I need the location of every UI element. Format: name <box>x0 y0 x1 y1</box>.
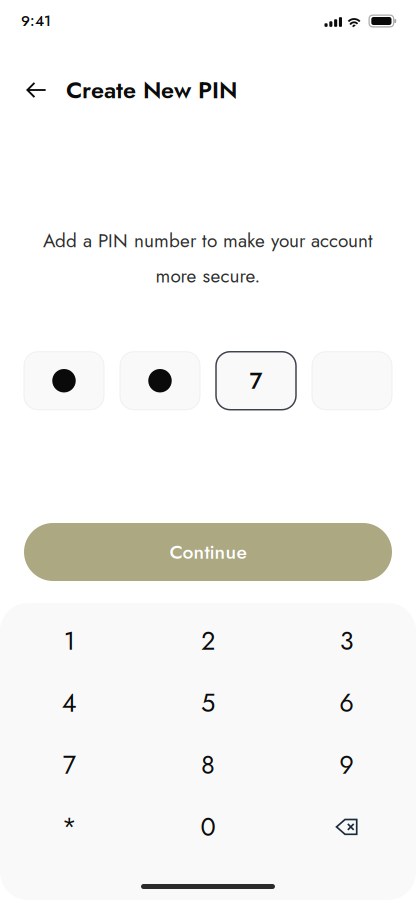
button[interactable]: Back <box>20 72 53 108</box>
staticText: 1 <box>64 623 75 659</box>
staticText: * <box>62 809 77 845</box>
staticText: Add a PIN number to make your account <box>43 227 373 254</box>
button[interactable]: 6 <box>277 672 416 734</box>
staticText: 8 <box>201 747 215 783</box>
button[interactable]: * <box>0 796 139 858</box>
staticText: Continue <box>169 538 246 566</box>
button[interactable]: 1 <box>0 610 139 672</box>
staticText: 9 <box>339 747 354 783</box>
staticText: more secure. <box>155 262 260 290</box>
staticText: 5 <box>201 685 215 721</box>
staticText: 6 <box>339 685 354 721</box>
button[interactable]: 3 <box>277 610 416 672</box>
staticText: 9:41 <box>21 10 51 32</box>
button[interactable]: 9 <box>277 734 416 796</box>
staticText: 4 <box>62 685 77 721</box>
button[interactable]: Delete <box>277 796 416 858</box>
staticText: 2 <box>201 623 215 659</box>
staticText: 3 <box>340 623 354 659</box>
staticText: 7 <box>63 747 76 783</box>
staticText: 0 <box>200 809 215 845</box>
button[interactable]: 4 <box>0 672 139 734</box>
staticText: 7 <box>249 364 262 398</box>
button[interactable]: 7 <box>0 734 139 796</box>
button[interactable]: 2 <box>139 610 277 672</box>
button[interactable]: Continue <box>24 523 392 581</box>
button[interactable]: 5 <box>139 672 277 734</box>
button[interactable]: 8 <box>139 734 277 796</box>
button[interactable]: 0 <box>139 796 277 858</box>
staticText: Create New PIN <box>66 73 237 107</box>
